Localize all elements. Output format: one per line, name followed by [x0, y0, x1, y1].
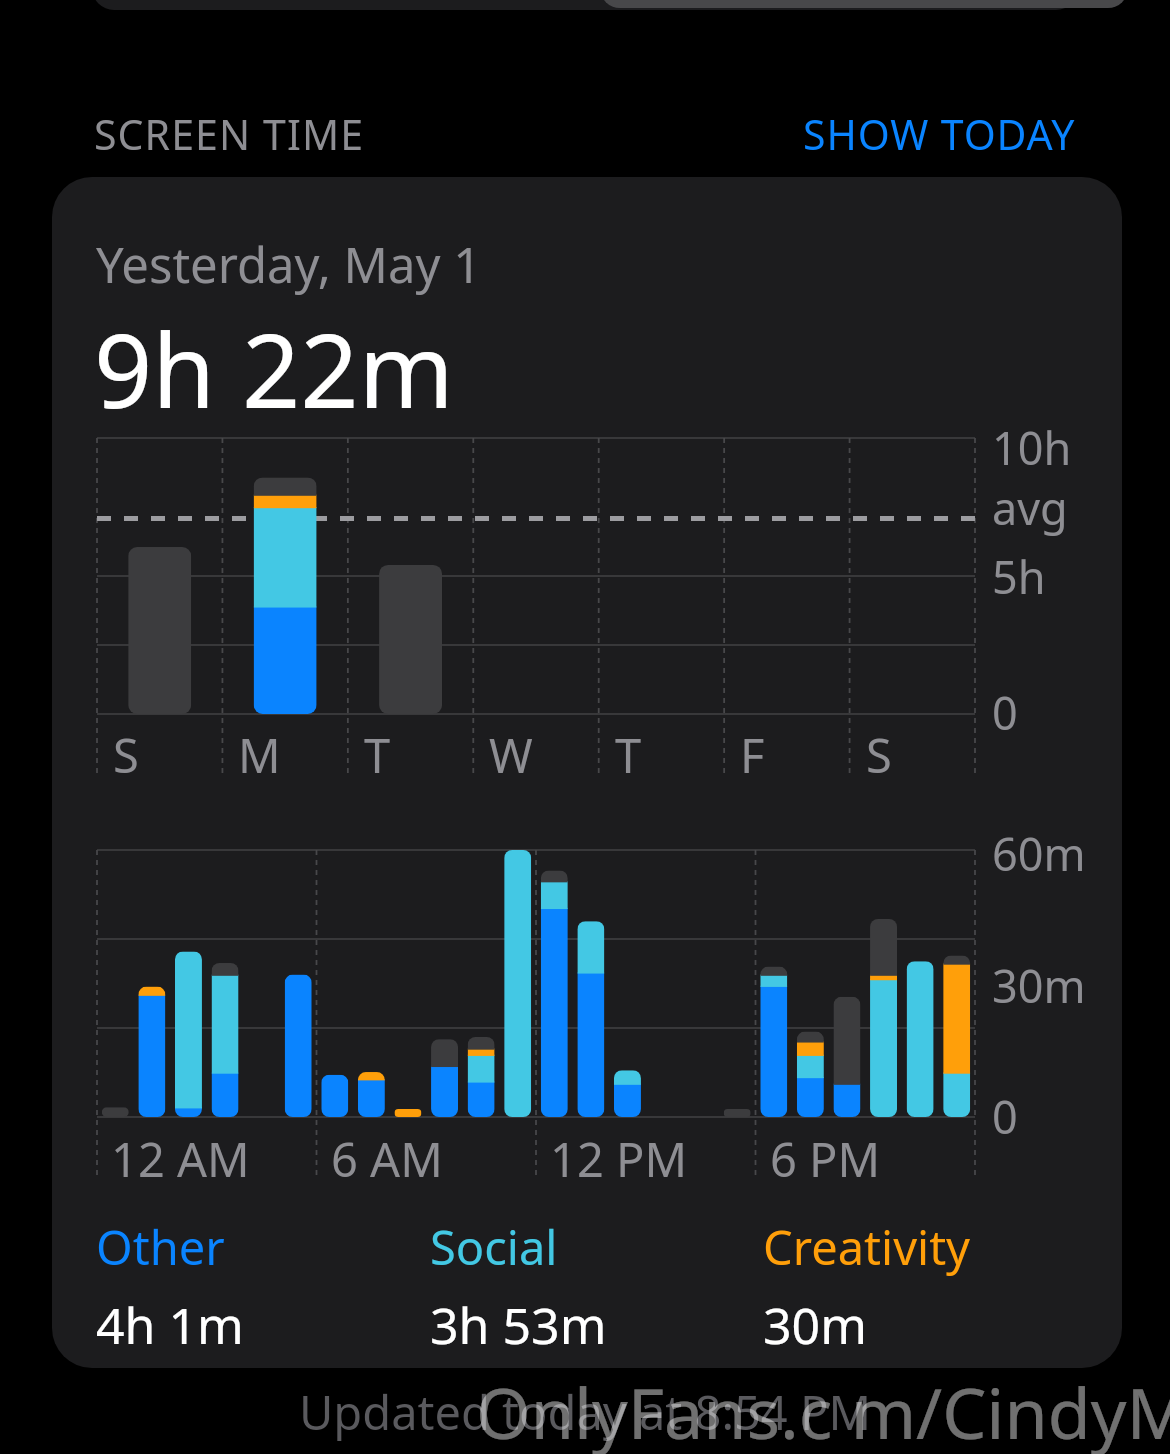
staticText: SHOW TODAY	[803, 106, 1076, 162]
staticText: 12 PM	[550, 1127, 688, 1191]
staticText: 5h	[992, 546, 1046, 607]
staticText: 9h 22m	[94, 299, 454, 438]
staticText: 60m	[992, 823, 1086, 884]
staticText: Yesterday, May 1	[96, 231, 482, 298]
staticText: 3h 53m	[430, 1291, 607, 1359]
button[interactable]: Creativity	[763, 1215, 1096, 1359]
staticText: avg	[992, 477, 1068, 538]
staticText: 0	[992, 682, 1018, 743]
staticText: 10h	[992, 417, 1072, 478]
staticText: 12 AM	[111, 1127, 250, 1191]
staticText: Social	[430, 1215, 558, 1279]
staticText: SCREEN TIME	[94, 106, 365, 162]
staticText: Creativity	[763, 1215, 971, 1279]
staticText: T	[364, 723, 391, 787]
button[interactable]: SHOW TODAY	[803, 106, 1076, 162]
staticText: 0	[992, 1086, 1018, 1147]
staticText: Updated today at 8:54 PM	[0, 1380, 1170, 1444]
staticText: T	[615, 723, 642, 787]
staticText: 4h 1m	[96, 1291, 244, 1359]
staticText: F	[740, 723, 765, 787]
staticText: OnlyFans.c m/CindyMoon	[476, 1364, 1170, 1454]
button[interactable]: Yesterday, May 1	[52, 177, 1122, 1368]
button[interactable]: Social	[430, 1215, 763, 1359]
staticText: 6 AM	[331, 1127, 443, 1191]
staticText: S	[866, 723, 892, 787]
button[interactable]: Other	[96, 1215, 430, 1359]
staticText: 6 PM	[770, 1127, 881, 1191]
staticText: Other	[96, 1215, 225, 1279]
staticText: S	[113, 723, 139, 787]
staticText: 30m	[992, 955, 1086, 1016]
staticText: W	[489, 723, 533, 787]
staticText: 30m	[763, 1291, 867, 1359]
staticText: M	[238, 723, 281, 787]
